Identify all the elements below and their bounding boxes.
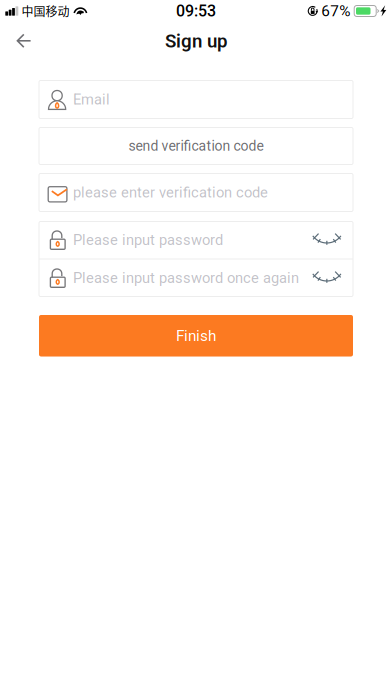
staticText: please enter verification code [73, 184, 268, 201]
button[interactable]: Please input password [39, 221, 301, 258]
button[interactable]: Email [39, 80, 353, 118]
staticText: Please input password [73, 231, 223, 249]
staticText: send verification code [128, 138, 263, 154]
staticText: Sign up [165, 30, 227, 52]
staticText: Email [73, 91, 110, 108]
button[interactable]: Show password [301, 221, 353, 258]
staticText: 中国移动 [22, 2, 70, 20]
staticText: Finish [176, 327, 216, 345]
button[interactable]: Show password [301, 259, 353, 296]
button[interactable]: Back [0, 21, 48, 61]
button[interactable]: send verification code [39, 127, 353, 164]
button[interactable]: Email [39, 80, 353, 118]
staticText: 67% [321, 2, 350, 20]
button[interactable]: please enter verification code [39, 173, 353, 211]
button[interactable]: please enter verification code [39, 173, 353, 211]
staticText: Please input password once again [73, 269, 299, 287]
staticText: 09:53 [176, 2, 216, 20]
button[interactable]: Finish [39, 315, 353, 356]
button[interactable]: Please input password once again [39, 259, 301, 296]
